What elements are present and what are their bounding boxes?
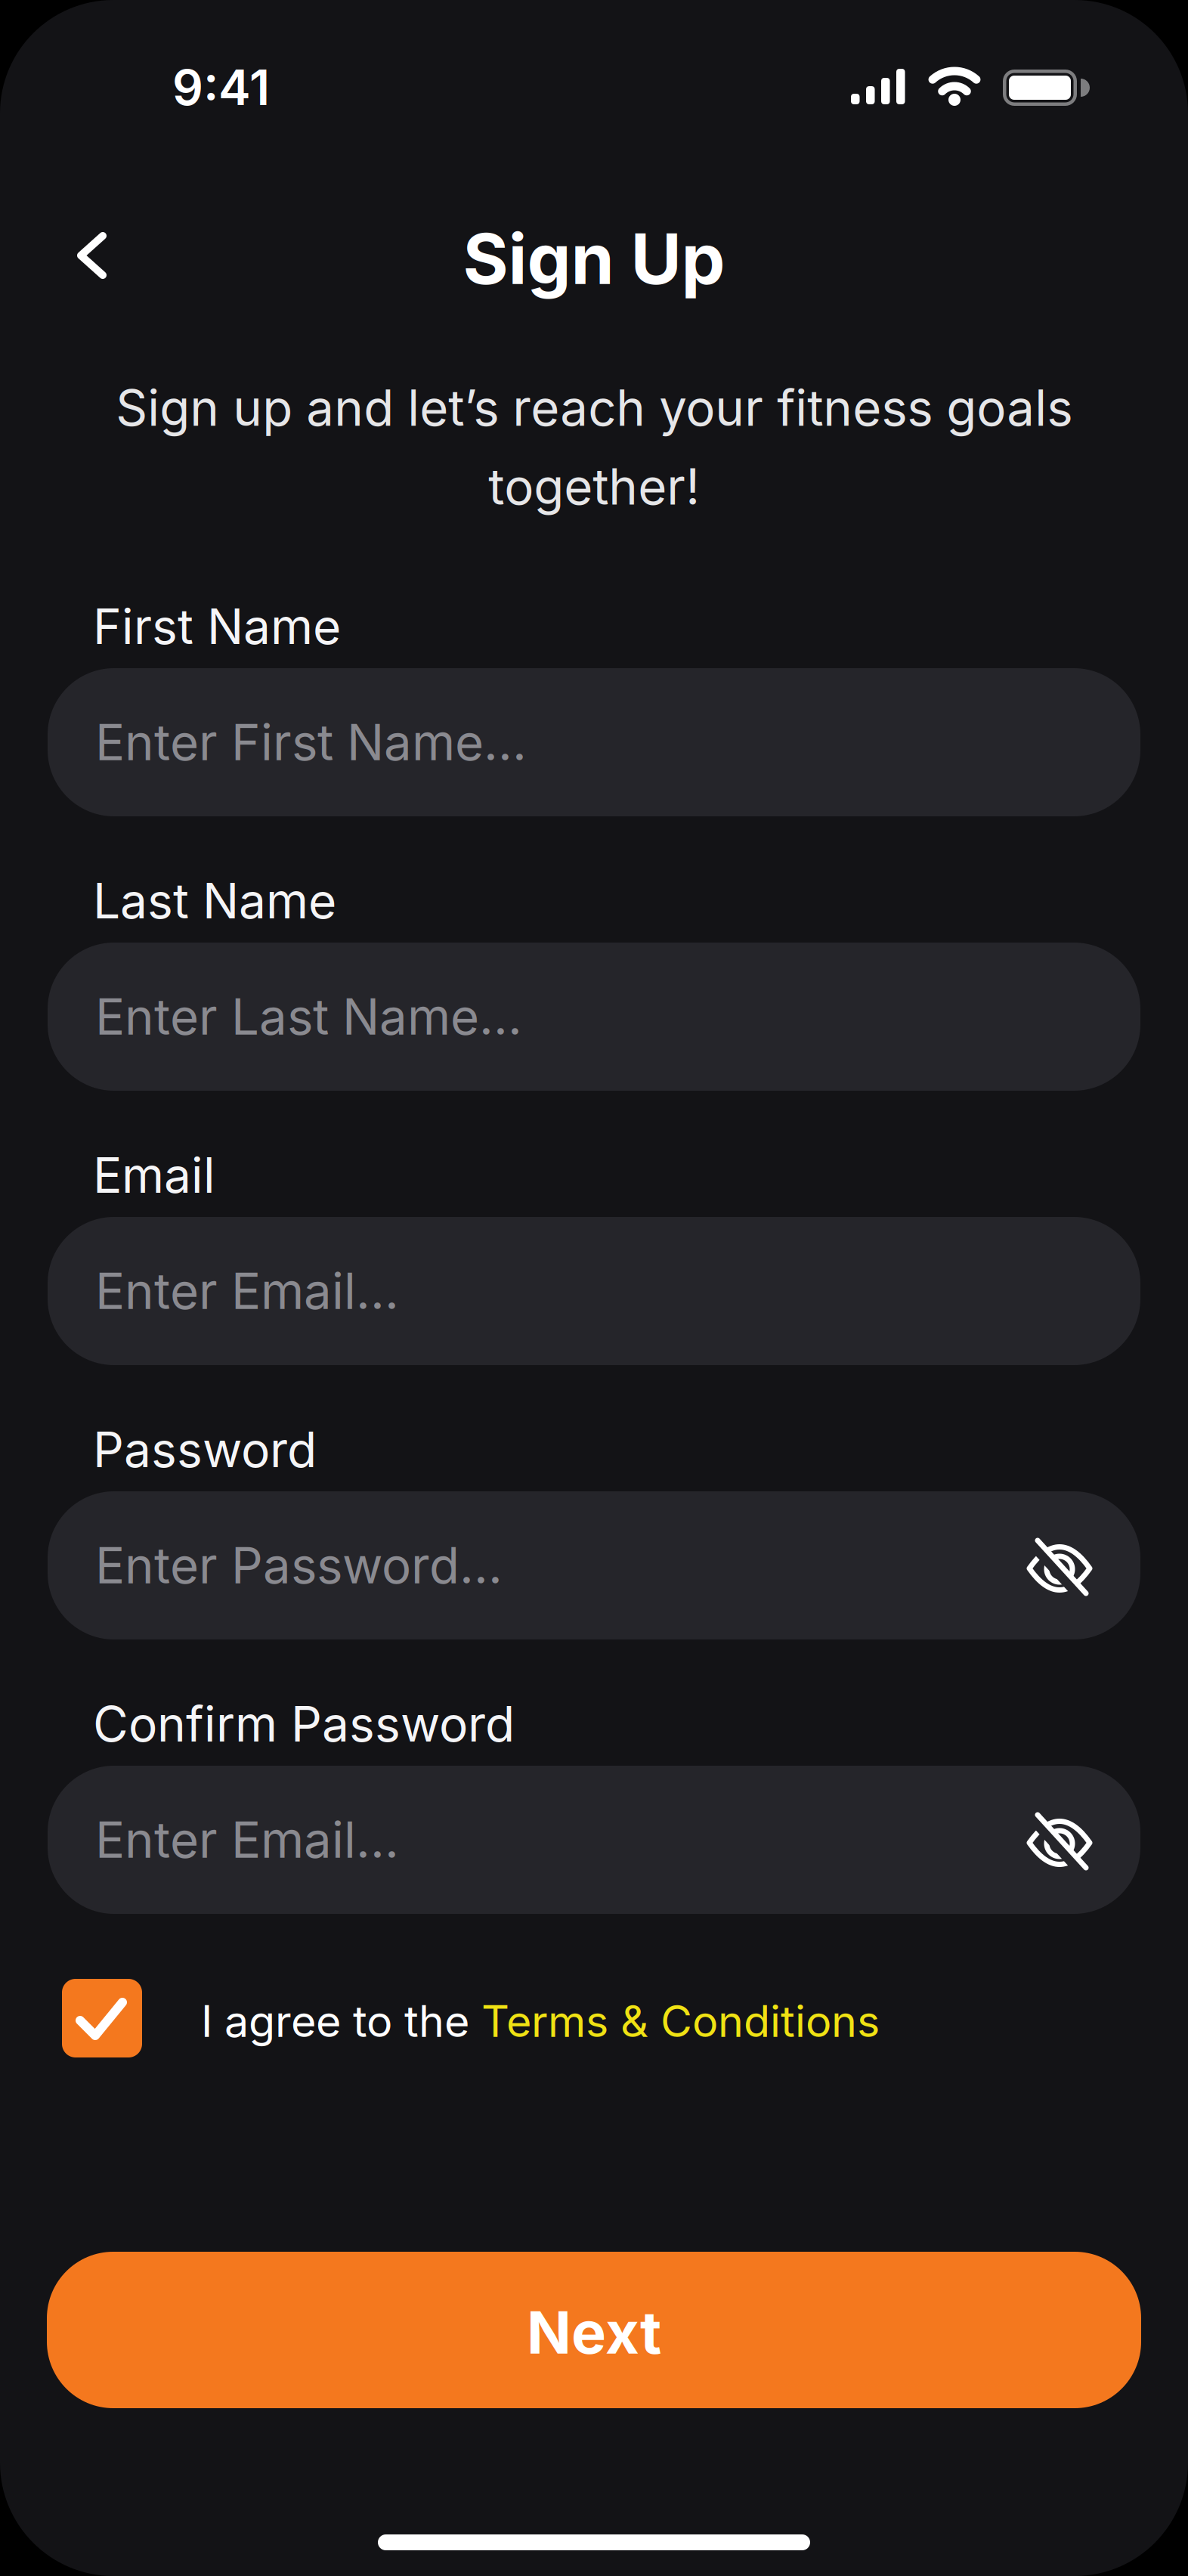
staticText: Enter Email... <box>95 1811 399 1869</box>
staticText: Terms & Conditions <box>481 1995 880 2047</box>
staticText: 9:41 <box>172 59 270 116</box>
staticText: Enter Password... <box>95 1536 503 1595</box>
button[interactable]: I agree to the Terms & Conditions <box>62 1979 142 2057</box>
staticText: Enter First Name... <box>95 713 527 771</box>
staticText: Email <box>93 1147 215 1204</box>
button[interactable]: Back <box>60 217 122 294</box>
staticText: Confirm Password <box>93 1695 515 1752</box>
staticText: I agree to the <box>201 1995 481 2047</box>
button[interactable]: Next <box>47 2252 1141 2408</box>
staticText: Password <box>93 1421 317 1478</box>
staticText: Next <box>527 2298 661 2367</box>
button[interactable]: Show password <box>1027 1812 1092 1868</box>
button[interactable]: Terms & Conditions <box>481 1995 880 2047</box>
staticText: Sign Up <box>463 218 725 300</box>
staticText: First Name <box>93 598 341 655</box>
staticText: Sign up and let’s reach your fitness goa… <box>116 379 1072 516</box>
staticText: Enter Email... <box>95 1262 399 1320</box>
staticText: Enter Last Name... <box>95 988 522 1046</box>
staticText: Last Name <box>93 872 336 929</box>
button[interactable]: Show password <box>1027 1537 1092 1593</box>
